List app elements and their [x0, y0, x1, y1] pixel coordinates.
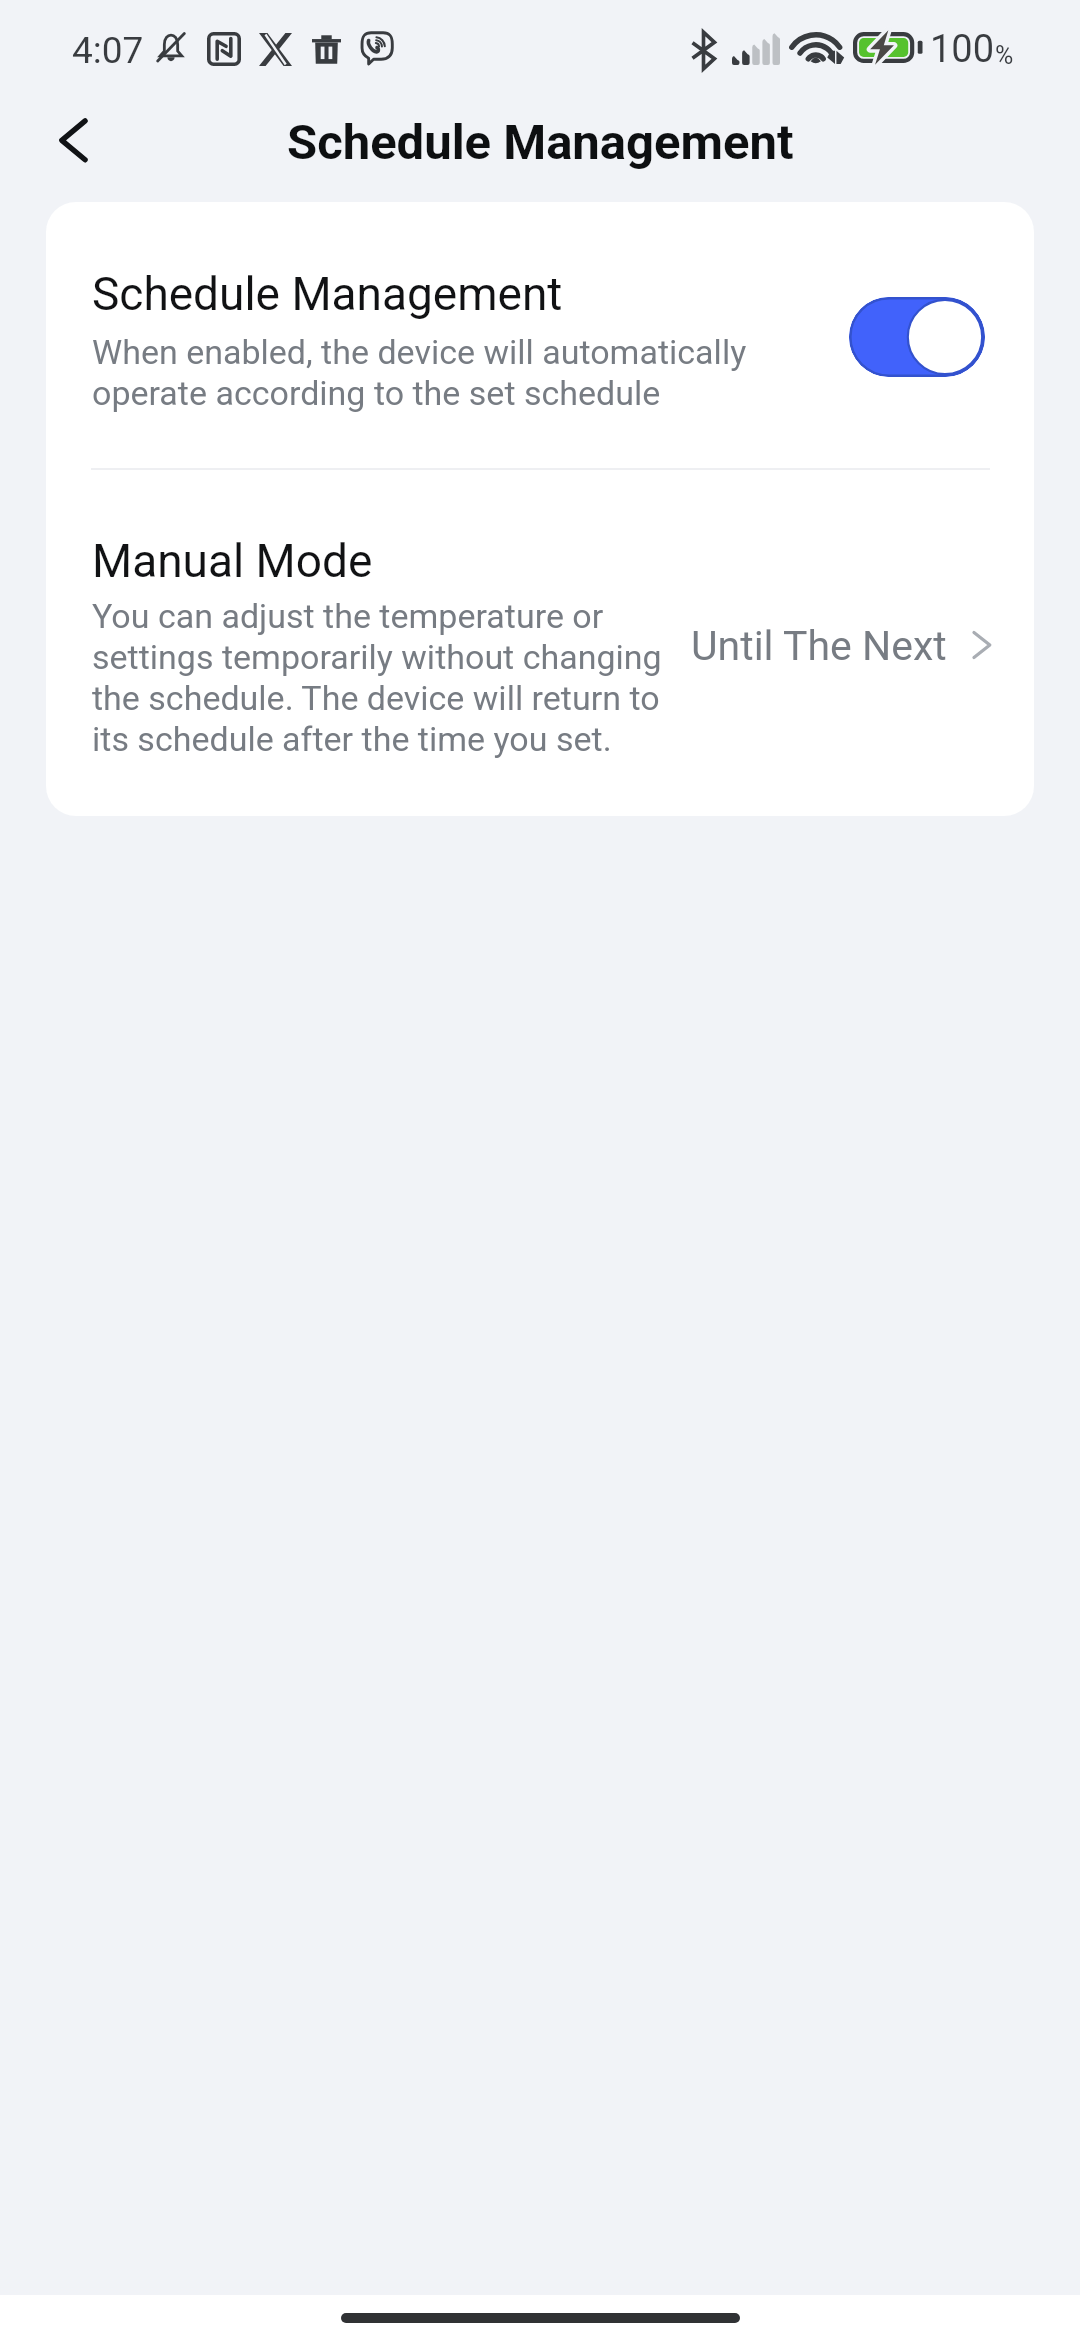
staticText: Manual Mode — [92, 536, 373, 588]
staticText: 4:07 — [72, 29, 144, 72]
staticText: Until The Next — [691, 622, 947, 670]
staticText: % — [995, 41, 1014, 70]
staticText: Schedule Management — [287, 114, 794, 171]
button[interactable]: Manual Mode — [46, 470, 1034, 816]
button[interactable]: Schedule Management toggle — [849, 297, 985, 377]
staticText: Schedule Management — [92, 269, 563, 321]
button[interactable]: Back — [38, 105, 108, 175]
staticText: You can adjust the temperature or settin… — [92, 596, 684, 760]
button[interactable]: Schedule Management — [46, 202, 1034, 468]
staticText: 100 — [930, 27, 995, 72]
staticText: When enabled, the device will automatica… — [92, 332, 792, 414]
